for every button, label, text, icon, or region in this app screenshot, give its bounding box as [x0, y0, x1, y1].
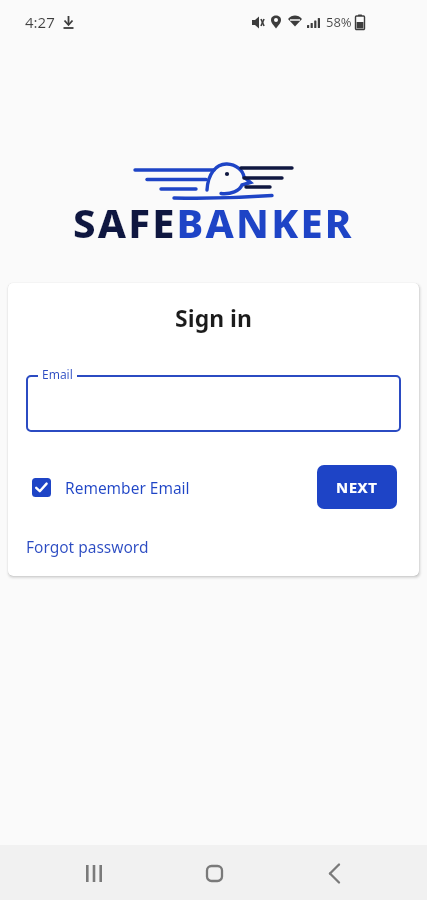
button[interactable]: Forgot password — [26, 536, 149, 557]
button[interactable]: NEXT — [317, 465, 397, 509]
staticText: Email — [42, 366, 73, 382]
button[interactable] — [190, 860, 238, 886]
button[interactable]: Remember Email — [32, 477, 190, 498]
staticText: NEXT — [336, 477, 378, 497]
staticText: Remember Email — [65, 477, 190, 498]
staticText: 58% — [326, 13, 352, 31]
button[interactable] — [26, 375, 401, 432]
button[interactable] — [310, 860, 358, 886]
button[interactable] — [70, 860, 118, 886]
staticText: Sign in — [8, 302, 419, 333]
staticText: SAFEBANKER — [73, 195, 354, 249]
staticText: 4:27 — [25, 12, 55, 32]
